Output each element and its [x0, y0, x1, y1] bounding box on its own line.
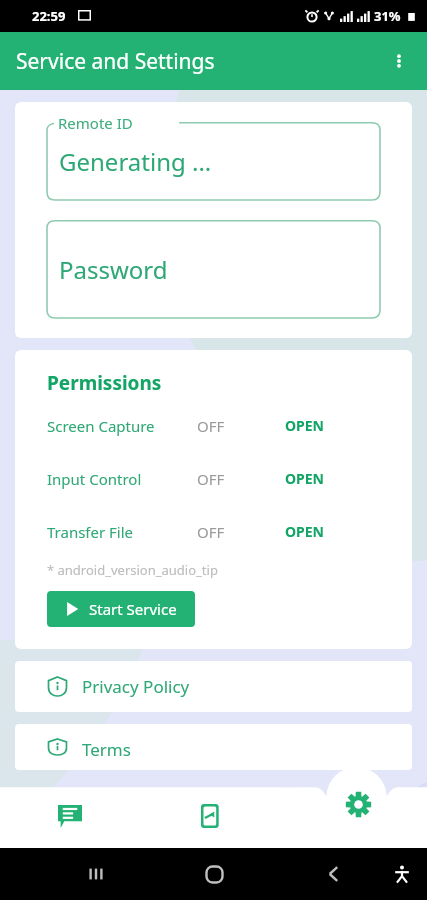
button[interactable]: Start Service [47, 591, 195, 627]
staticText: OFF [197, 469, 281, 489]
staticText: Privacy Policy [82, 675, 190, 698]
staticText: Permissions [47, 370, 162, 396]
staticText: 22:59 [32, 7, 66, 25]
button[interactable]: Settings [334, 780, 382, 828]
staticText: Service and Settings [16, 47, 215, 76]
button[interactable]: Recents [76, 854, 116, 894]
button[interactable]: OPEN [281, 412, 328, 439]
staticText: OPEN [285, 469, 324, 488]
button[interactable]: More options [379, 41, 419, 81]
staticText: Terms [82, 738, 131, 756]
staticText: OPEN [285, 522, 324, 541]
button[interactable]: OPEN [281, 518, 328, 545]
staticText: Input Control [47, 469, 197, 489]
button[interactable]: Privacy Policy [15, 661, 412, 712]
staticText: OPEN [285, 416, 324, 435]
button[interactable]: Back [314, 854, 354, 894]
staticText: 31% [374, 7, 401, 25]
staticText: OFF [197, 522, 281, 542]
button[interactable]: Terms [15, 724, 412, 770]
staticText: Remote ID [58, 113, 133, 133]
button[interactable]: Remote ID [47, 122, 380, 200]
staticText: Start Service [89, 599, 177, 619]
staticText: Screen Capture [47, 416, 197, 436]
button[interactable]: Accessibility [382, 854, 422, 894]
staticText: * android_version_audio_tip [47, 561, 218, 579]
staticText: Transfer File [47, 522, 197, 542]
button[interactable]: OPEN [281, 465, 328, 492]
staticText: OFF [197, 416, 281, 436]
button[interactable]: Password [47, 220, 380, 318]
staticText: Generating ... [59, 145, 212, 178]
button[interactable]: Remote device [192, 794, 236, 838]
staticText: Password [59, 253, 168, 286]
button[interactable]: Home [194, 854, 234, 894]
button[interactable]: Messages [48, 794, 92, 838]
